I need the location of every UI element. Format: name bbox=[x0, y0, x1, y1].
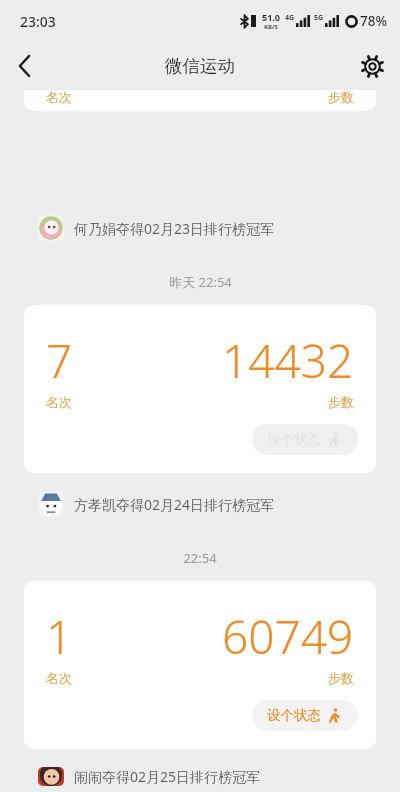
button[interactable]: 方孝凯夺得02月24日排行榜冠军 bbox=[0, 477, 400, 523]
staticText: 步数 bbox=[328, 670, 354, 686]
staticText: 7 bbox=[46, 329, 73, 392]
staticText: 名次 bbox=[46, 90, 72, 105]
button[interactable]: 何乃娟夺得02月23日排行榜冠军 bbox=[0, 201, 400, 247]
staticText: KB/S bbox=[264, 23, 278, 31]
staticText: 1 bbox=[46, 605, 73, 668]
staticText: 60749 bbox=[222, 605, 354, 668]
staticText: 闹闹夺得02月25日排行榜冠军 bbox=[74, 767, 261, 786]
staticText: 4G bbox=[285, 13, 295, 23]
button[interactable]: 11 bbox=[24, 90, 376, 111]
staticText: 微信运动 bbox=[165, 55, 235, 77]
button[interactable]: 设个状态 bbox=[252, 424, 358, 455]
staticText: 23:03 bbox=[20, 12, 56, 31]
staticText: 设个状态 bbox=[267, 431, 321, 448]
staticText: 方孝凯夺得02月24日排行榜冠军 bbox=[74, 495, 275, 514]
staticText: 22:54 bbox=[183, 549, 217, 567]
button[interactable]: 闹闹夺得02月25日排行榜冠军 bbox=[0, 753, 400, 792]
staticText: 何乃娟夺得02月23日排行榜冠军 bbox=[74, 219, 275, 238]
staticText: 14432 bbox=[222, 329, 354, 392]
staticText: 步数 bbox=[328, 394, 354, 410]
staticText: 名次 bbox=[46, 394, 72, 410]
staticText: 步数 bbox=[328, 90, 354, 105]
staticText: 名次 bbox=[46, 670, 72, 686]
button[interactable]: Settings bbox=[350, 44, 394, 88]
staticText: 昨天 22:54 bbox=[169, 273, 232, 291]
button[interactable]: Back bbox=[2, 44, 46, 88]
button[interactable]: 1 bbox=[24, 581, 376, 749]
staticText: 5G bbox=[314, 13, 324, 23]
staticText: 51.0 bbox=[262, 11, 280, 23]
button[interactable]: 设个状态 bbox=[252, 700, 358, 731]
button[interactable]: 7 bbox=[24, 305, 376, 473]
staticText: 设个状态 bbox=[267, 707, 321, 724]
staticText: 78% bbox=[360, 12, 387, 30]
